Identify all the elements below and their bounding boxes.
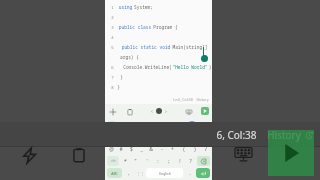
button[interactable]: Add <box>108 107 117 116</box>
staticText: " <box>134 158 137 165</box>
button[interactable]: @ <box>106 143 116 155</box>
button[interactable]: ( <box>178 143 189 155</box>
staticText: History <box>196 97 209 102</box>
staticText: } <box>117 84 120 90</box>
staticText: English <box>159 171 171 176</box>
staticText: ) <box>194 146 196 153</box>
staticText: + <box>171 146 174 153</box>
button[interactable]: ' <box>141 155 152 167</box>
button[interactable]: Run program <box>268 130 314 176</box>
button[interactable]: Enter <box>196 168 210 178</box>
button[interactable]: ) <box>189 143 200 155</box>
button[interactable]: Voice input <box>201 121 209 129</box>
button[interactable]: ! <box>174 155 185 167</box>
button[interactable]: Translate <box>188 121 196 129</box>
staticText: / <box>205 146 207 153</box>
staticText: "Hello World" <box>172 64 208 70</box>
button[interactable]: History <box>267 128 314 142</box>
button[interactable]: * <box>120 155 130 167</box>
button[interactable]: Toggle keyboard <box>226 136 260 170</box>
staticText: ABC <box>111 171 118 176</box>
staticText: $ <box>130 146 133 153</box>
staticText: 6, Col:38 <box>216 128 257 142</box>
button[interactable]: Keyboard <box>184 107 193 116</box>
staticText: 6 <box>111 65 114 70</box>
staticText: 4 <box>111 35 114 40</box>
button[interactable]: " <box>130 155 141 167</box>
staticText: 2 <box>111 15 114 20</box>
button[interactable]: _ <box>136 143 146 155</box>
button[interactable]: # <box>116 143 126 155</box>
staticText: ‹ <box>151 107 153 115</box>
button[interactable]: & <box>146 143 156 155</box>
staticText: * <box>124 158 127 165</box>
staticText: ⋮⋮ <box>136 171 144 176</box>
button[interactable]: : <box>152 155 163 167</box>
staticText: ); <box>208 64 212 70</box>
staticText: 5 <box>111 45 114 50</box>
staticText: › <box>165 107 167 115</box>
button[interactable]: + <box>167 143 178 155</box>
staticText: 7 <box>111 75 114 80</box>
button[interactable]: Run <box>201 107 209 115</box>
staticText: 8 <box>111 85 114 90</box>
staticText: args) { <box>120 54 139 60</box>
staticText: ( <box>183 146 185 153</box>
button[interactable]: $ <box>126 143 136 155</box>
staticText: =\< <box>111 159 116 163</box>
staticText: ; <box>168 158 170 165</box>
button[interactable]: / <box>200 143 211 155</box>
staticText: , <box>128 170 130 177</box>
staticText: public static void <box>120 44 172 50</box>
staticText: . <box>189 170 191 177</box>
staticText: Console.WriteLine( <box>123 64 172 70</box>
button[interactable]: ABC <box>107 168 122 178</box>
button[interactable]: Keyboard settings <box>134 167 145 179</box>
staticText: ! <box>179 158 181 165</box>
staticText: @ <box>109 146 114 153</box>
staticText: History <box>267 128 301 142</box>
button[interactable]: Paste <box>125 107 134 116</box>
staticText: Ln:6, Col:38 <box>173 97 193 102</box>
staticText: 3 <box>111 25 114 30</box>
button[interactable]: . <box>184 167 195 179</box>
button[interactable]: 1 <box>105 0 212 104</box>
staticText: Main(string[] <box>172 44 208 50</box>
button[interactable]: - <box>156 143 167 155</box>
staticText: System; <box>134 4 153 10</box>
staticText: ' <box>146 158 148 165</box>
button[interactable]: , <box>123 167 134 179</box>
button[interactable]: English <box>146 168 183 178</box>
staticText: Program { <box>153 24 178 30</box>
staticText: } <box>120 74 123 80</box>
staticText: # <box>119 146 123 153</box>
button[interactable]: ; <box>163 155 174 167</box>
button[interactable]: =\< <box>107 156 119 166</box>
staticText: _ <box>140 146 143 153</box>
staticText: - <box>161 146 163 153</box>
button[interactable]: Backspace <box>197 156 210 166</box>
button[interactable]: ? <box>185 155 196 167</box>
button[interactable]: Quick run <box>12 138 46 172</box>
button[interactable]: Emoji <box>108 121 116 129</box>
button[interactable]: Clipboard <box>62 138 96 172</box>
staticText: 1 <box>111 5 114 10</box>
